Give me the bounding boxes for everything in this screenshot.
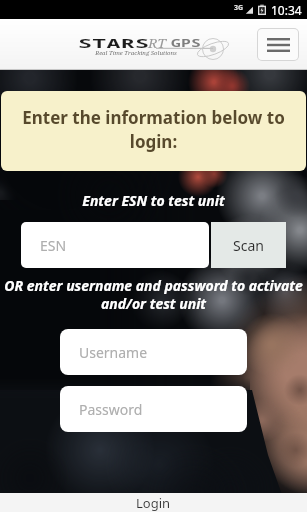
staticText: STARS — [78, 34, 151, 52]
staticText: Scan — [233, 236, 264, 255]
staticText: Login — [136, 494, 171, 512]
staticText: GPS — [171, 36, 202, 50]
staticText: 10:34 — [271, 2, 302, 18]
staticText: 3G — [234, 3, 244, 13]
staticText: Username — [79, 343, 148, 362]
staticText: OR enter username and password to activa… — [4, 276, 303, 313]
staticText: ESN — [40, 236, 67, 255]
staticText: Real Time Tracking Solutions — [95, 49, 177, 57]
button[interactable]: Username — [60, 329, 247, 375]
button[interactable]: ESN — [21, 222, 209, 268]
button[interactable]: Menu — [258, 29, 298, 60]
button[interactable]: Login — [0, 493, 307, 512]
staticText: RT — [148, 34, 167, 52]
staticText: Enter ESN to test unit — [0, 191, 307, 210]
staticText: Enter the information below to login: — [13, 106, 294, 153]
button[interactable]: Scan — [211, 222, 286, 268]
staticText: Password — [79, 400, 143, 419]
button[interactable]: Password — [60, 386, 247, 432]
